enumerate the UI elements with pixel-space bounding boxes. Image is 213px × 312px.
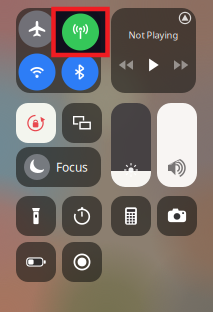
button[interactable]: Previous <box>119 58 133 72</box>
button[interactable]: Bluetooth <box>61 53 98 90</box>
button[interactable]: Wi-Fi <box>18 53 55 90</box>
button[interactable]: Play <box>146 57 161 72</box>
button[interactable]: Calculator <box>111 196 151 236</box>
button[interactable]: Airplane Mode <box>18 10 55 47</box>
button[interactable]: Screen Mirroring <box>62 103 102 143</box>
button[interactable]: Focus <box>16 147 101 187</box>
button[interactable]: Screen Recording <box>62 242 102 282</box>
button[interactable]: AirPlay <box>179 12 191 24</box>
button[interactable]: Timer <box>62 196 102 236</box>
button[interactable]: Next <box>174 58 188 72</box>
button[interactable]: Flashlight <box>16 196 56 236</box>
staticText: Not Playing <box>128 29 178 41</box>
staticText: Focus <box>56 159 88 175</box>
button[interactable]: Rotation Lock <box>16 103 56 143</box>
button[interactable]: Cellular Data <box>61 10 98 47</box>
button[interactable]: Low Power Mode <box>16 242 56 282</box>
button[interactable]: Brightness <box>111 103 151 187</box>
button[interactable]: Volume <box>157 103 197 187</box>
button[interactable]: Camera <box>157 196 197 236</box>
